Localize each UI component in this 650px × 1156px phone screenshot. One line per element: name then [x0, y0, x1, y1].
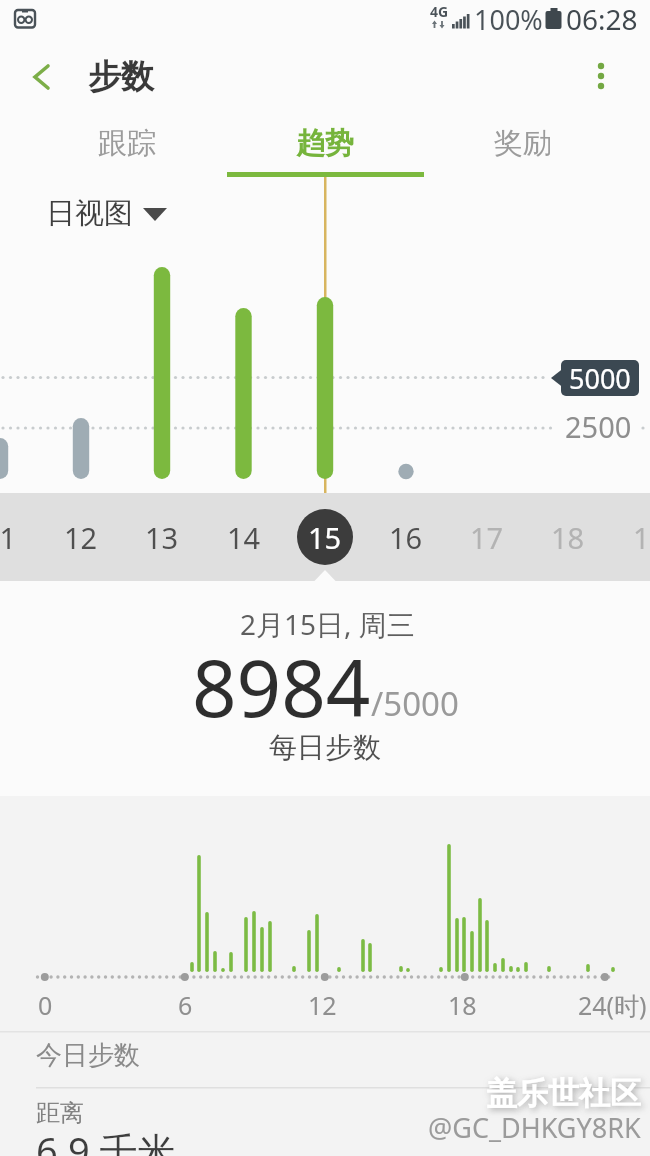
staticText: 11: [0, 518, 17, 557]
staticText: 16: [389, 518, 423, 557]
staticText: 06:28: [566, 0, 638, 38]
button[interactable]: 17: [447, 493, 527, 581]
staticText: 8984: [192, 634, 371, 740]
button[interactable]: 14: [204, 493, 284, 581]
staticText: 15: [308, 518, 342, 557]
staticText: 趋势: [296, 125, 354, 162]
button[interactable]: 日视图: [44, 190, 174, 236]
button[interactable]: 12: [41, 493, 121, 581]
button[interactable]: [580, 52, 624, 96]
staticText: 14: [227, 518, 261, 557]
staticText: 6.9 千米: [36, 1124, 176, 1156]
staticText: 13: [145, 518, 179, 557]
staticText: 跟踪: [98, 125, 156, 162]
button[interactable]: 奖励: [424, 110, 622, 177]
button[interactable]: 趋势: [226, 110, 424, 177]
staticText: 步数: [88, 56, 154, 98]
staticText: 每日步数: [269, 730, 381, 765]
staticText: 距离: [36, 1098, 84, 1128]
staticText: 5000: [569, 360, 631, 397]
staticText: 100%: [474, 1, 543, 38]
staticText: 6: [178, 988, 193, 1022]
staticText: 4G: [430, 2, 449, 21]
staticText: 2月15日, 周三: [240, 605, 415, 643]
staticText: 2500: [565, 407, 632, 446]
staticText: 奖励: [494, 125, 552, 162]
staticText: 0: [38, 988, 53, 1022]
staticText: 24(时): [578, 988, 647, 1022]
staticText: /5000: [371, 681, 459, 726]
button[interactable]: 11: [0, 493, 40, 581]
button[interactable]: 15: [297, 509, 353, 565]
staticText: 17: [470, 518, 504, 557]
button[interactable]: 跟踪: [28, 110, 226, 177]
staticText: 12: [308, 988, 337, 1022]
staticText: @GC_DHKGY8RK: [428, 1109, 641, 1146]
staticText: 18: [551, 518, 585, 557]
staticText: 日视图: [46, 195, 133, 232]
staticText: 18: [448, 988, 477, 1022]
button[interactable]: 18: [528, 493, 608, 581]
staticText: 12: [64, 518, 98, 557]
button[interactable]: 13: [122, 493, 202, 581]
staticText: 19: [633, 518, 650, 557]
button[interactable]: [24, 52, 68, 96]
button[interactable]: 16: [366, 493, 446, 581]
button[interactable]: 19: [610, 493, 650, 581]
staticText: 今日步数: [36, 1039, 140, 1072]
staticText: 盖乐世社区: [486, 1074, 641, 1113]
